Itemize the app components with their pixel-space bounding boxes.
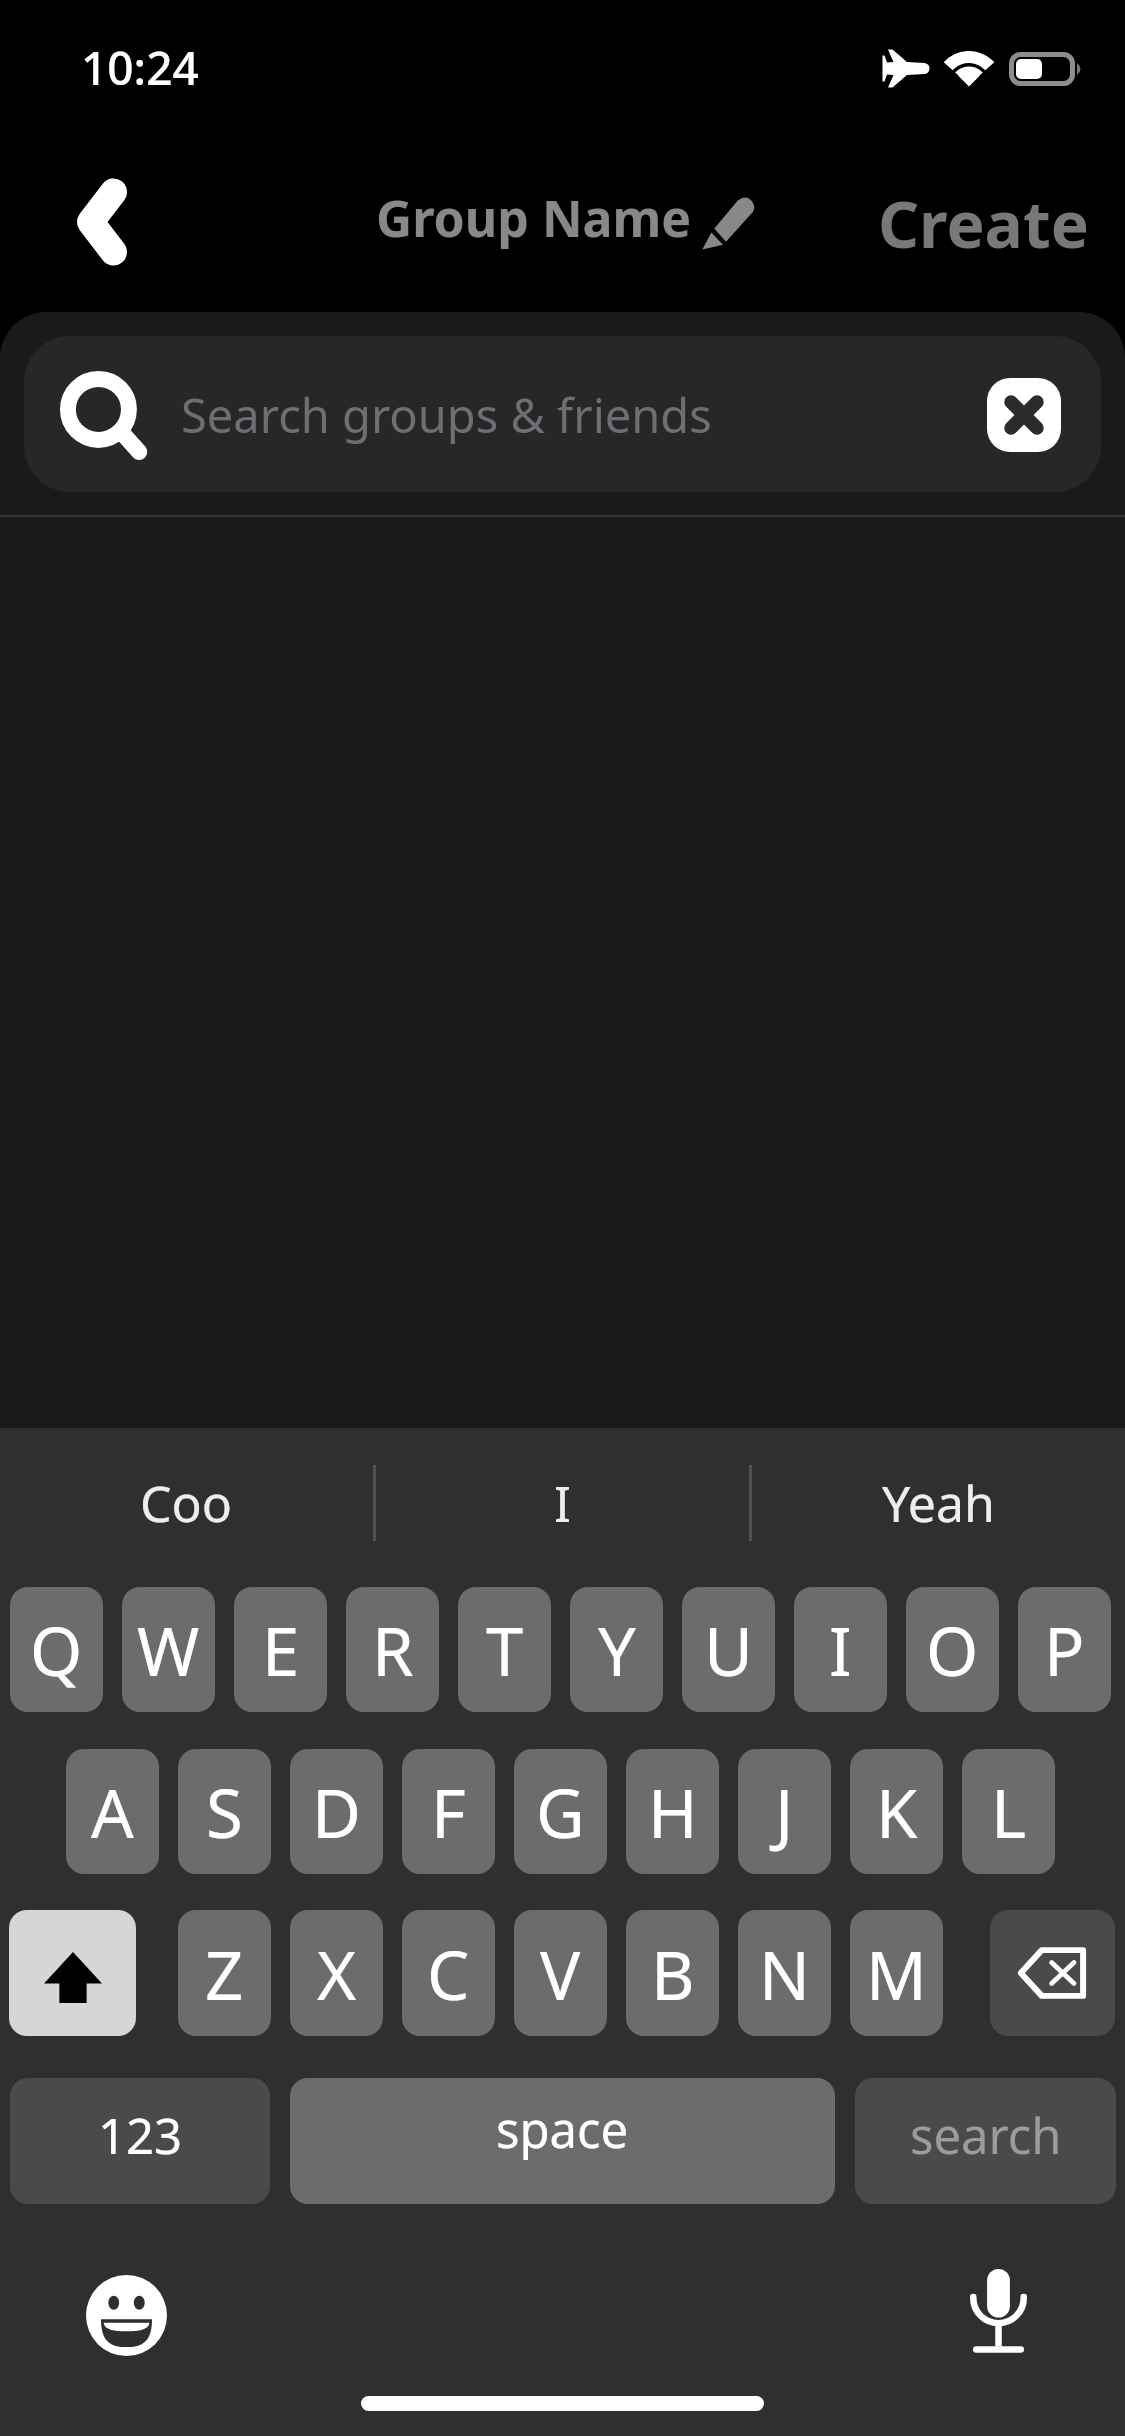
staticText: Search groups & friends (181, 383, 712, 447)
button[interactable]: D (290, 1749, 383, 1874)
staticText: E (262, 1604, 300, 1695)
staticText: X (317, 1928, 357, 2019)
staticText: W (137, 1604, 200, 1695)
staticText: Create (878, 180, 1089, 256)
button[interactable]: Z (178, 1910, 271, 2036)
button[interactable]: Yeah (752, 1428, 1125, 1578)
button[interactable]: I (794, 1587, 887, 1712)
staticText: search (910, 2102, 1062, 2169)
button[interactable]: space (290, 2078, 835, 2204)
button[interactable]: C (402, 1910, 495, 2036)
staticText: D (312, 1766, 361, 1857)
button[interactable]: search (855, 2078, 1116, 2204)
staticText: Yeah (882, 1469, 995, 1537)
button[interactable]: Shift (9, 1910, 136, 2036)
button[interactable]: A (66, 1749, 159, 1874)
button[interactable]: J (738, 1749, 831, 1874)
staticText: R (372, 1604, 414, 1695)
staticText: G (536, 1766, 585, 1857)
staticText: C (427, 1928, 470, 2019)
staticText: Group Name (376, 184, 692, 252)
button[interactable]: R (346, 1587, 439, 1712)
button[interactable]: K (850, 1749, 943, 1874)
button[interactable]: O (906, 1587, 999, 1712)
button[interactable]: Clear search (987, 378, 1061, 452)
button[interactable]: Voice input (953, 2267, 1043, 2357)
button[interactable]: Create (871, 180, 1096, 256)
staticText: J (775, 1766, 794, 1857)
staticText: B (651, 1928, 695, 2019)
staticText: Coo (140, 1469, 233, 1537)
staticText: 123 (98, 2102, 183, 2169)
staticText: U (704, 1604, 753, 1695)
button[interactable]: L (962, 1749, 1055, 1874)
staticText: H (648, 1766, 698, 1857)
staticText: Y (598, 1604, 636, 1695)
staticText: I (554, 1469, 571, 1537)
button[interactable]: H (626, 1749, 719, 1874)
staticText: S (206, 1766, 243, 1857)
staticText: F (431, 1766, 466, 1857)
button[interactable]: Backspace (990, 1910, 1115, 2036)
button[interactable]: F (402, 1749, 495, 1874)
button[interactable]: Back (38, 152, 166, 292)
button[interactable]: X (290, 1910, 383, 2036)
staticText: T (486, 1604, 524, 1695)
staticText: Q (30, 1604, 83, 1695)
button[interactable]: I (376, 1428, 749, 1578)
staticText: K (876, 1766, 918, 1857)
button[interactable]: Group Name (376, 180, 752, 256)
button[interactable]: E (234, 1587, 327, 1712)
staticText: I (829, 1604, 852, 1695)
button[interactable]: Search groups & friends (24, 336, 1101, 492)
button[interactable]: S (178, 1749, 271, 1874)
staticText: 10:24 (81, 36, 199, 99)
button[interactable]: W (122, 1587, 215, 1712)
button[interactable]: U (682, 1587, 775, 1712)
button[interactable]: Q (10, 1587, 103, 1712)
staticText: V (540, 1928, 581, 2019)
staticText: Z (205, 1928, 244, 2019)
staticText: N (759, 1928, 810, 2019)
button[interactable]: Y (570, 1587, 663, 1712)
staticText: L (991, 1766, 1027, 1857)
button[interactable]: 123 (10, 2078, 270, 2204)
button[interactable]: Coo (0, 1428, 373, 1578)
button[interactable]: V (514, 1910, 607, 2036)
button[interactable]: B (626, 1910, 719, 2036)
staticText: A (91, 1766, 134, 1857)
button[interactable]: N (738, 1910, 831, 2036)
button[interactable]: P (1018, 1587, 1111, 1712)
button[interactable]: G (514, 1749, 607, 1874)
button[interactable]: Emoji (81, 2270, 171, 2360)
button[interactable]: T (458, 1587, 551, 1712)
staticText: M (866, 1928, 927, 2019)
staticText: space (496, 2096, 629, 2163)
button[interactable]: M (850, 1910, 943, 2036)
staticText: P (1044, 1604, 1085, 1695)
staticText: O (926, 1604, 979, 1695)
